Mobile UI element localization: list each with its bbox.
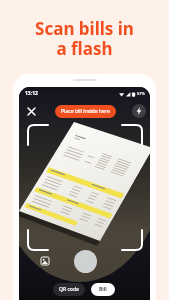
button[interactable]: Close [23,103,39,119]
staticText: 67% [137,91,145,96]
staticText: Bill [99,286,107,293]
staticText: Place bill inside here [61,108,110,115]
button[interactable]: QR code [53,283,85,296]
staticText: Scan bills in a flash [35,17,134,60]
button[interactable]: Place bill inside here [55,105,116,118]
button[interactable]: Capture [74,250,97,273]
button[interactable]: Gallery [37,253,52,268]
button[interactable]: Flash [132,104,146,118]
staticText: 13:12 [25,90,38,97]
button[interactable]: Bill [91,283,115,296]
staticText: QR code [59,286,79,293]
